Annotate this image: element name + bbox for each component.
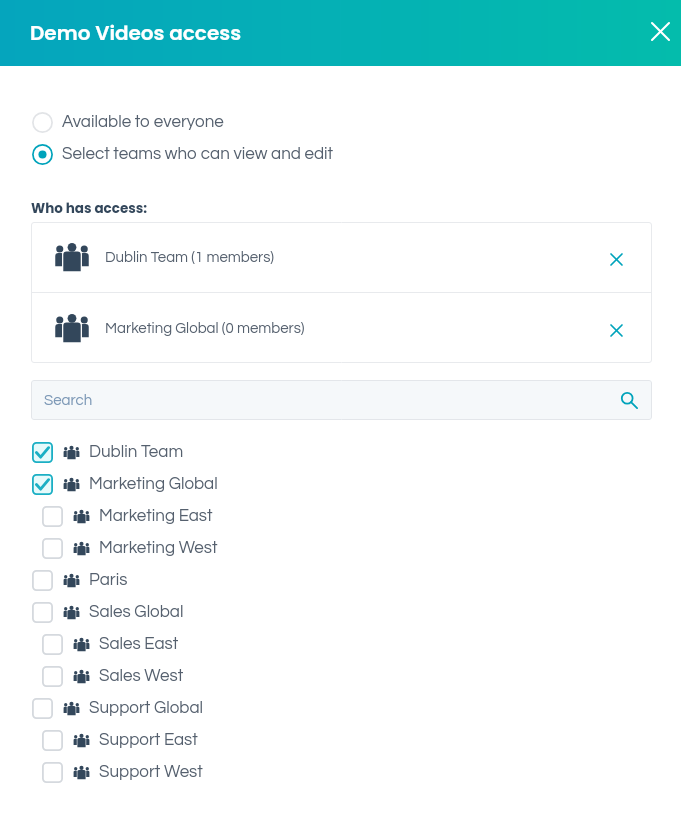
button[interactable]: Sales West [42,660,681,692]
button[interactable]: Paris [32,564,681,596]
button[interactable]: Marketing Global (0 members) [54,293,630,363]
staticText: Support West [99,763,203,781]
button[interactable]: Sales Global [32,596,681,628]
button[interactable]: Dublin Team [32,436,681,468]
button[interactable]: Support West [42,756,681,788]
button[interactable]: Close [641,12,679,50]
staticText: Marketing East [99,507,213,525]
staticText: Available to everyone [62,113,224,131]
staticText: Marketing Global [89,475,218,493]
button[interactable]: Remove [602,316,630,344]
staticText: Dublin Team (1 members) [105,250,274,265]
button[interactable]: Marketing West [42,532,681,564]
staticText: Sales West [99,667,184,685]
staticText: Paris [89,571,128,589]
staticText: Search [44,393,93,408]
button[interactable]: Support Global [32,692,681,724]
staticText: Marketing Global (0 members) [105,321,305,336]
staticText: Support East [99,731,198,749]
staticText: Select teams who can view and edit [62,145,334,163]
button[interactable]: Available to everyone [32,106,681,138]
staticText: Sales East [99,635,179,653]
staticText: Dublin Team [89,443,184,461]
other: Search [618,389,640,411]
button[interactable]: Search [31,380,652,420]
staticText: Demo Videos access [30,19,242,47]
button[interactable]: Marketing Global [32,468,681,500]
button[interactable]: Select teams who can view and edit [32,138,681,170]
button[interactable]: Marketing East [42,500,681,532]
button[interactable]: Sales East [42,628,681,660]
staticText: Sales Global [89,603,184,621]
staticText: Who has access: [31,199,148,218]
staticText: Support Global [89,699,204,717]
staticText: Marketing West [99,539,218,557]
button[interactable]: Support East [42,724,681,756]
button[interactable]: Dublin Team (1 members) [54,222,630,292]
button[interactable]: Remove [602,245,630,273]
